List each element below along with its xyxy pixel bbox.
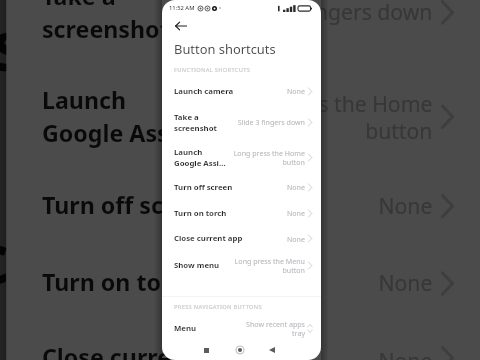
button[interactable]: Close current app bbox=[6, 321, 480, 360]
staticText: None bbox=[286, 208, 305, 218]
staticText: Long press the Menu button bbox=[234, 256, 305, 275]
button[interactable]: Take a screenshot bbox=[6, 0, 480, 65]
button[interactable]: Turn on torch bbox=[6, 243, 480, 321]
staticText: FUNCTIONAL SHORTCUTS bbox=[174, 66, 251, 74]
button[interactable]: Close current app bbox=[162, 226, 321, 251]
staticText: Launch Google Assi… bbox=[174, 147, 231, 168]
staticText: Show menu bbox=[174, 260, 232, 271]
staticText: None bbox=[286, 182, 305, 192]
staticText: Slide 3 fingers down bbox=[237, 117, 305, 127]
staticText: None bbox=[286, 86, 305, 96]
button[interactable]: Turn off screen bbox=[0, 70, 480, 360]
staticText: Close current app bbox=[42, 342, 370, 360]
button[interactable]: Menu bbox=[162, 317, 321, 339]
button[interactable]: Turn off screen bbox=[6, 166, 480, 243]
staticText: Turn on torch bbox=[174, 208, 284, 219]
staticText: Take a screenshot bbox=[174, 112, 235, 133]
staticText: Long press the Home button bbox=[172, 0, 480, 79]
staticText: Take a screenshot bbox=[42, 0, 224, 44]
staticText: Close current app bbox=[174, 233, 284, 244]
staticText: Launch Google Assi… bbox=[42, 85, 212, 148]
button[interactable]: Show menu bbox=[162, 251, 321, 280]
staticText: None bbox=[376, 345, 432, 360]
staticText: Launch Google Assi… bbox=[0, 0, 155, 88]
button[interactable]: Turn off screen bbox=[162, 174, 321, 200]
staticText: Menu bbox=[174, 323, 244, 334]
button[interactable]: Launch Google Assi… bbox=[6, 65, 480, 166]
staticText: Turn on torch bbox=[42, 267, 370, 300]
button[interactable]: Turn on torch bbox=[162, 200, 321, 226]
button[interactable]: Recent apps bbox=[196, 340, 216, 360]
staticText: Turn off screen bbox=[174, 182, 284, 193]
button[interactable]: Home bbox=[230, 340, 250, 360]
button[interactable]: Launch Google Assi… bbox=[0, 0, 480, 70]
button[interactable]: Back bbox=[262, 340, 282, 360]
button[interactable]: Launch Google Assi… bbox=[162, 140, 321, 174]
button[interactable]: Take a screenshot bbox=[162, 104, 321, 140]
staticText: Turn off screen bbox=[42, 190, 370, 222]
staticText: Button shortcuts bbox=[174, 40, 276, 58]
staticText: None bbox=[376, 190, 432, 219]
staticText: Long press the Home button bbox=[233, 148, 305, 167]
button[interactable]: Turn off screen bbox=[0, 142, 480, 360]
staticText: PRESS NAVIGATION BUTTONS bbox=[174, 303, 262, 311]
button[interactable]: Launch Google Assi… bbox=[0, 0, 480, 142]
staticText: Launch camera bbox=[174, 86, 284, 97]
staticText: Turn off screen bbox=[0, 281, 480, 360]
button[interactable]: Navigate up bbox=[170, 16, 192, 36]
staticText: Turn off screen bbox=[0, 213, 480, 310]
staticText: None bbox=[376, 267, 432, 297]
staticText: Long press the Home button bbox=[218, 88, 432, 145]
staticText: None bbox=[286, 234, 305, 244]
button[interactable]: Launch camera bbox=[162, 78, 321, 104]
staticText: Slide 3 fingers down bbox=[230, 0, 432, 26]
staticText: 11:52 AM bbox=[169, 4, 195, 12]
staticText: Show recent apps tray bbox=[246, 319, 305, 338]
